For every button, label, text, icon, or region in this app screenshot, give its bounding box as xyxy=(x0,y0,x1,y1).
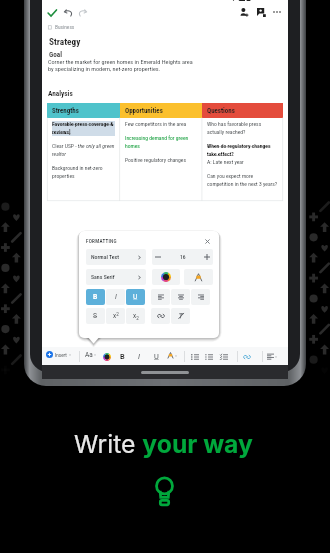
button[interactable] xyxy=(151,308,170,324)
staticText: Opportunities xyxy=(125,107,163,115)
button[interactable]: Insert xyxy=(46,351,72,358)
staticText: U xyxy=(133,293,138,301)
staticText: Corner the market for green homes in Eme… xyxy=(48,58,193,65)
staticText: When do regulatory changes take effect? xyxy=(207,143,278,158)
button[interactable]: S xyxy=(86,308,105,324)
staticText: x2 xyxy=(133,312,139,321)
staticText: Strategy xyxy=(49,36,81,47)
staticText: Background in net-zero properties xyxy=(52,165,115,180)
button[interactable] xyxy=(171,308,190,324)
button[interactable]: Redo xyxy=(76,6,90,20)
staticText: Questions xyxy=(207,107,235,115)
button[interactable]: I xyxy=(135,352,143,360)
button[interactable] xyxy=(152,269,180,285)
button[interactable]: 16 xyxy=(152,249,213,265)
staticText: Clear USP - the only all green realtor xyxy=(52,143,115,158)
button[interactable]: Text style xyxy=(85,351,97,359)
button[interactable]: More options xyxy=(272,7,282,17)
staticText: Normal Text xyxy=(91,254,119,261)
staticText: Favorable press coverage & reviews] xyxy=(52,121,115,136)
button[interactable]: U xyxy=(152,352,160,360)
button[interactable]: Close formatting xyxy=(203,237,211,245)
staticText: B xyxy=(93,293,98,301)
staticText: I xyxy=(115,293,117,301)
button[interactable]: U xyxy=(126,289,145,305)
staticText: S xyxy=(93,312,98,320)
staticText: Who has favorable press actually reached… xyxy=(207,121,278,136)
staticText: x2 xyxy=(113,312,119,320)
button[interactable]: Sans Serif xyxy=(86,269,146,285)
button[interactable]: Done xyxy=(45,6,59,20)
staticText: FORMATTING xyxy=(86,238,117,244)
button[interactable]: Insert link xyxy=(243,353,251,361)
button[interactable] xyxy=(191,289,210,305)
staticText: B xyxy=(120,352,125,360)
button[interactable] xyxy=(151,289,170,305)
button[interactable]: x2 xyxy=(126,308,145,324)
staticText: Business xyxy=(55,24,75,30)
button[interactable] xyxy=(184,269,213,285)
button[interactable]: Undo xyxy=(61,6,75,20)
staticText: Aa xyxy=(85,351,93,359)
staticText: Increasing demand for green homes xyxy=(125,135,197,150)
staticText: A: Late next year xyxy=(207,159,244,166)
staticText: Insert xyxy=(55,352,67,358)
button[interactable]: B xyxy=(86,289,105,305)
staticText: by specializing in modern, net-zero prop… xyxy=(48,65,161,72)
button[interactable]: I xyxy=(106,289,125,305)
staticText: Can you expect more competition in the n… xyxy=(207,173,278,188)
button[interactable]: x2 xyxy=(106,308,125,324)
button[interactable]: Text color xyxy=(103,353,111,361)
staticText: Sans Serif xyxy=(91,274,115,281)
staticText: U xyxy=(154,352,159,360)
staticText: Goal xyxy=(49,50,62,58)
staticText: Analysis xyxy=(48,89,73,98)
button[interactable]: Add comment xyxy=(256,7,266,17)
button[interactable]: Share xyxy=(239,7,249,17)
button[interactable]: Checklist xyxy=(220,353,228,361)
staticText: Write your way xyxy=(74,429,253,459)
button[interactable]: Alignment xyxy=(267,353,278,360)
button[interactable]: B xyxy=(118,352,126,360)
button[interactable]: Numbered list xyxy=(205,353,213,361)
staticText: 16 xyxy=(180,254,186,261)
button[interactable]: Highlight color xyxy=(167,352,178,359)
staticText: Few competitors in the area xyxy=(125,121,187,128)
staticText: I xyxy=(138,352,140,360)
button[interactable] xyxy=(171,289,190,305)
staticText: Strengths xyxy=(52,107,79,115)
button[interactable]: Bulleted list xyxy=(191,353,199,361)
staticText: Positive regulatory changes xyxy=(125,157,186,164)
button[interactable]: Normal Text xyxy=(86,249,146,265)
